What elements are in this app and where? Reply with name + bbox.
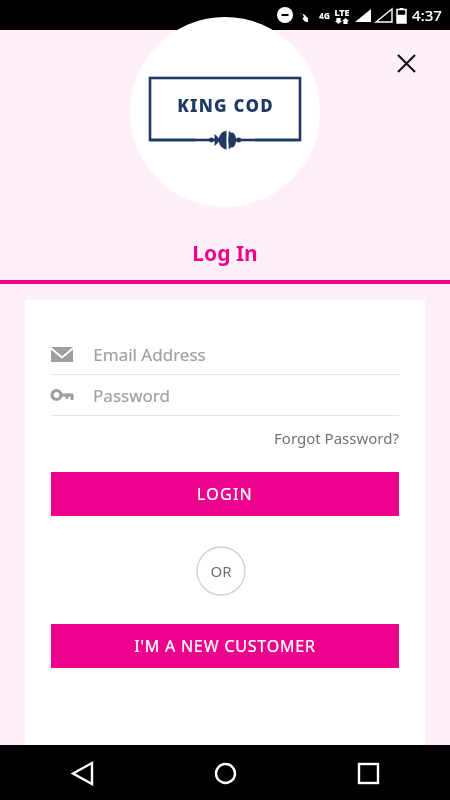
staticText: I'M A NEW CUSTOMER	[134, 635, 316, 657]
staticText: 4G	[319, 10, 330, 21]
button[interactable]: Forgot Password?	[274, 424, 399, 452]
staticText: Password	[93, 384, 170, 407]
button[interactable]: Recent apps	[346, 751, 390, 795]
staticText: Log In	[192, 239, 258, 268]
staticText: Forgot Password?	[274, 428, 399, 448]
button[interactable]: I'M A NEW CUSTOMER	[51, 624, 399, 668]
button[interactable]: Home	[203, 751, 247, 795]
staticText: Email Address	[93, 343, 206, 366]
button[interactable]: Back	[60, 751, 104, 795]
staticText: LOGIN	[197, 483, 253, 505]
staticText: KING COD	[177, 94, 274, 117]
button[interactable]: LOGIN	[51, 472, 399, 516]
staticText: LTE	[334, 6, 350, 18]
staticText: 4:37	[412, 5, 442, 25]
button[interactable]: Close	[388, 45, 424, 81]
staticText: OR	[210, 561, 232, 581]
